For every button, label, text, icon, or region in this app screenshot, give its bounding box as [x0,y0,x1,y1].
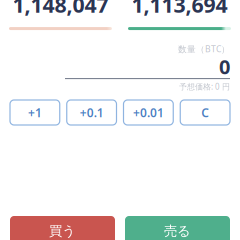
button[interactable]: Sell price 1,113,694 [128,0,231,30]
staticText: +1 [28,104,42,121]
staticText: C [201,104,209,121]
button[interactable]: C [180,100,230,125]
button[interactable]: 買う [10,216,115,240]
button[interactable]: Buy price 1,148,047 [9,0,112,30]
button[interactable]: +0.01 [123,100,173,125]
staticText: +0.01 [133,104,164,121]
staticText: 1,113,694 [131,0,227,19]
staticText: +0.1 [80,104,104,121]
staticText: 買う [49,223,76,239]
button[interactable]: +0.1 [67,100,117,125]
staticText: 0 [219,53,230,80]
button[interactable]: 売る [125,216,230,240]
staticText: 1,148,047 [12,0,108,19]
staticText: 売る [164,223,191,239]
staticText: 数量（BTC） [178,43,230,55]
staticText: 予想価格: 0 円 [179,81,230,92]
button[interactable]: +1 [10,100,60,125]
